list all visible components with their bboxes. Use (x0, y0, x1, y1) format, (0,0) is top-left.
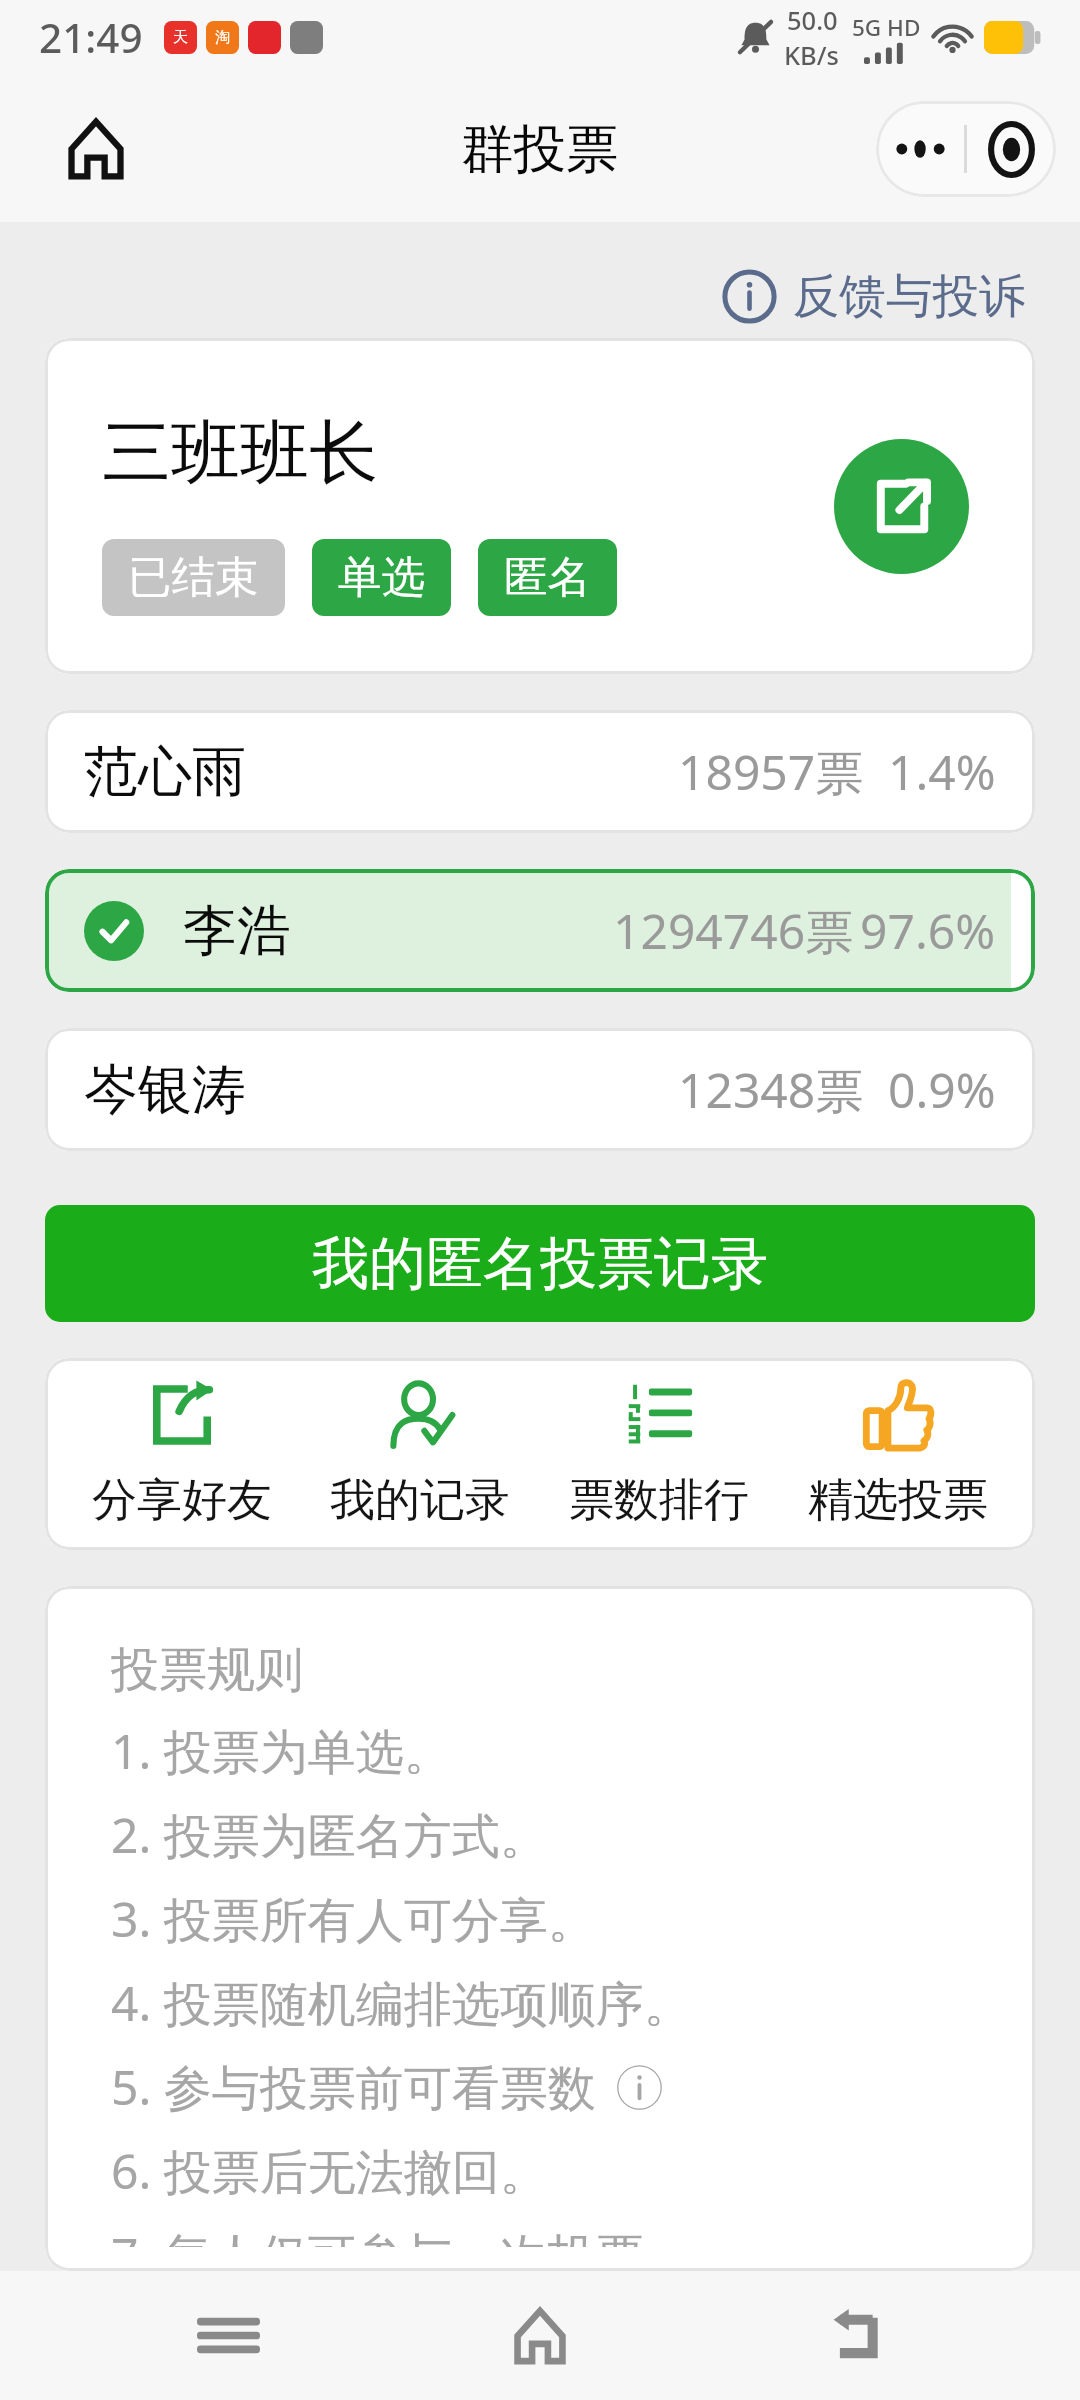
button[interactable]: 精选投票 (778, 1358, 1017, 1550)
staticText: 匿名 (504, 550, 591, 605)
staticText: 李浩 (183, 897, 291, 965)
staticText: 21:49 (39, 10, 143, 65)
staticText: 群投票 (461, 116, 619, 182)
staticText: 分享好友 (92, 1472, 272, 1529)
staticText: 5G HD (852, 12, 921, 43)
staticText: 单选 (338, 550, 425, 605)
staticText: 50.0 (787, 3, 838, 38)
button[interactable]: 主屏幕 (456, 2271, 624, 2400)
staticText: 淘 (215, 28, 230, 47)
staticText: 0.9% (888, 1057, 996, 1122)
staticText: 6. 投票后无法撤回。 (111, 2138, 548, 2204)
staticText: 我的记录 (330, 1472, 510, 1529)
staticText: 投票规则 (111, 1640, 303, 1700)
staticText: 97.6% (860, 898, 996, 963)
button[interactable]: 关闭 (967, 101, 1056, 197)
button[interactable]: 分享 (834, 439, 969, 574)
button[interactable]: 最近任务 (144, 2271, 312, 2400)
button[interactable]: 返回首页 (24, 77, 168, 221)
button[interactable]: 分享好友 (63, 1358, 301, 1550)
staticText: 我的匿名投票记录 (312, 1228, 768, 1300)
staticText: 范心雨 (84, 738, 246, 806)
button[interactable]: 更多 (876, 101, 964, 197)
staticText: 7. 每人仅可参与一次投票。 (111, 2222, 692, 2247)
button[interactable]: 返回 (768, 2271, 936, 2400)
staticText: 4. 投票随机编排选项顺序。 (111, 1970, 692, 2036)
staticText: 票数排行 (569, 1472, 749, 1529)
button[interactable]: 反馈与投诉 (712, 255, 1038, 338)
staticText: 1.4% (888, 739, 996, 804)
button[interactable]: 我的匿名投票记录 (45, 1205, 1035, 1322)
button[interactable]: 范心雨 (45, 710, 1035, 833)
staticText: 已结束 (128, 550, 259, 605)
button[interactable]: 我的记录 (301, 1358, 539, 1550)
staticText: 12348票 (678, 1057, 864, 1123)
staticText: 18957票 (678, 739, 864, 805)
button[interactable]: 说明 (617, 2065, 662, 2110)
button[interactable]: 票数排行 (539, 1358, 778, 1550)
staticText: 1294746票 (613, 898, 854, 964)
button[interactable]: 岑银涛 (45, 1028, 1035, 1151)
staticText: 精选投票 (808, 1472, 988, 1529)
staticText: 2. 投票为匿名方式。 (111, 1802, 548, 1868)
staticText: 5. 参与投票前可看票数 (111, 2054, 596, 2120)
staticText: 3. 投票所有人可分享。 (111, 1886, 596, 1952)
staticText: 反馈与投诉 (793, 267, 1026, 326)
staticText: 岑银涛 (84, 1056, 246, 1124)
staticText: 三班班长 (102, 410, 378, 497)
staticText: KB/s (784, 38, 840, 73)
button[interactable]: 李浩 (45, 869, 1035, 992)
staticText: 天 (173, 28, 188, 47)
staticText: 1. 投票为单选。 (111, 1718, 452, 1784)
